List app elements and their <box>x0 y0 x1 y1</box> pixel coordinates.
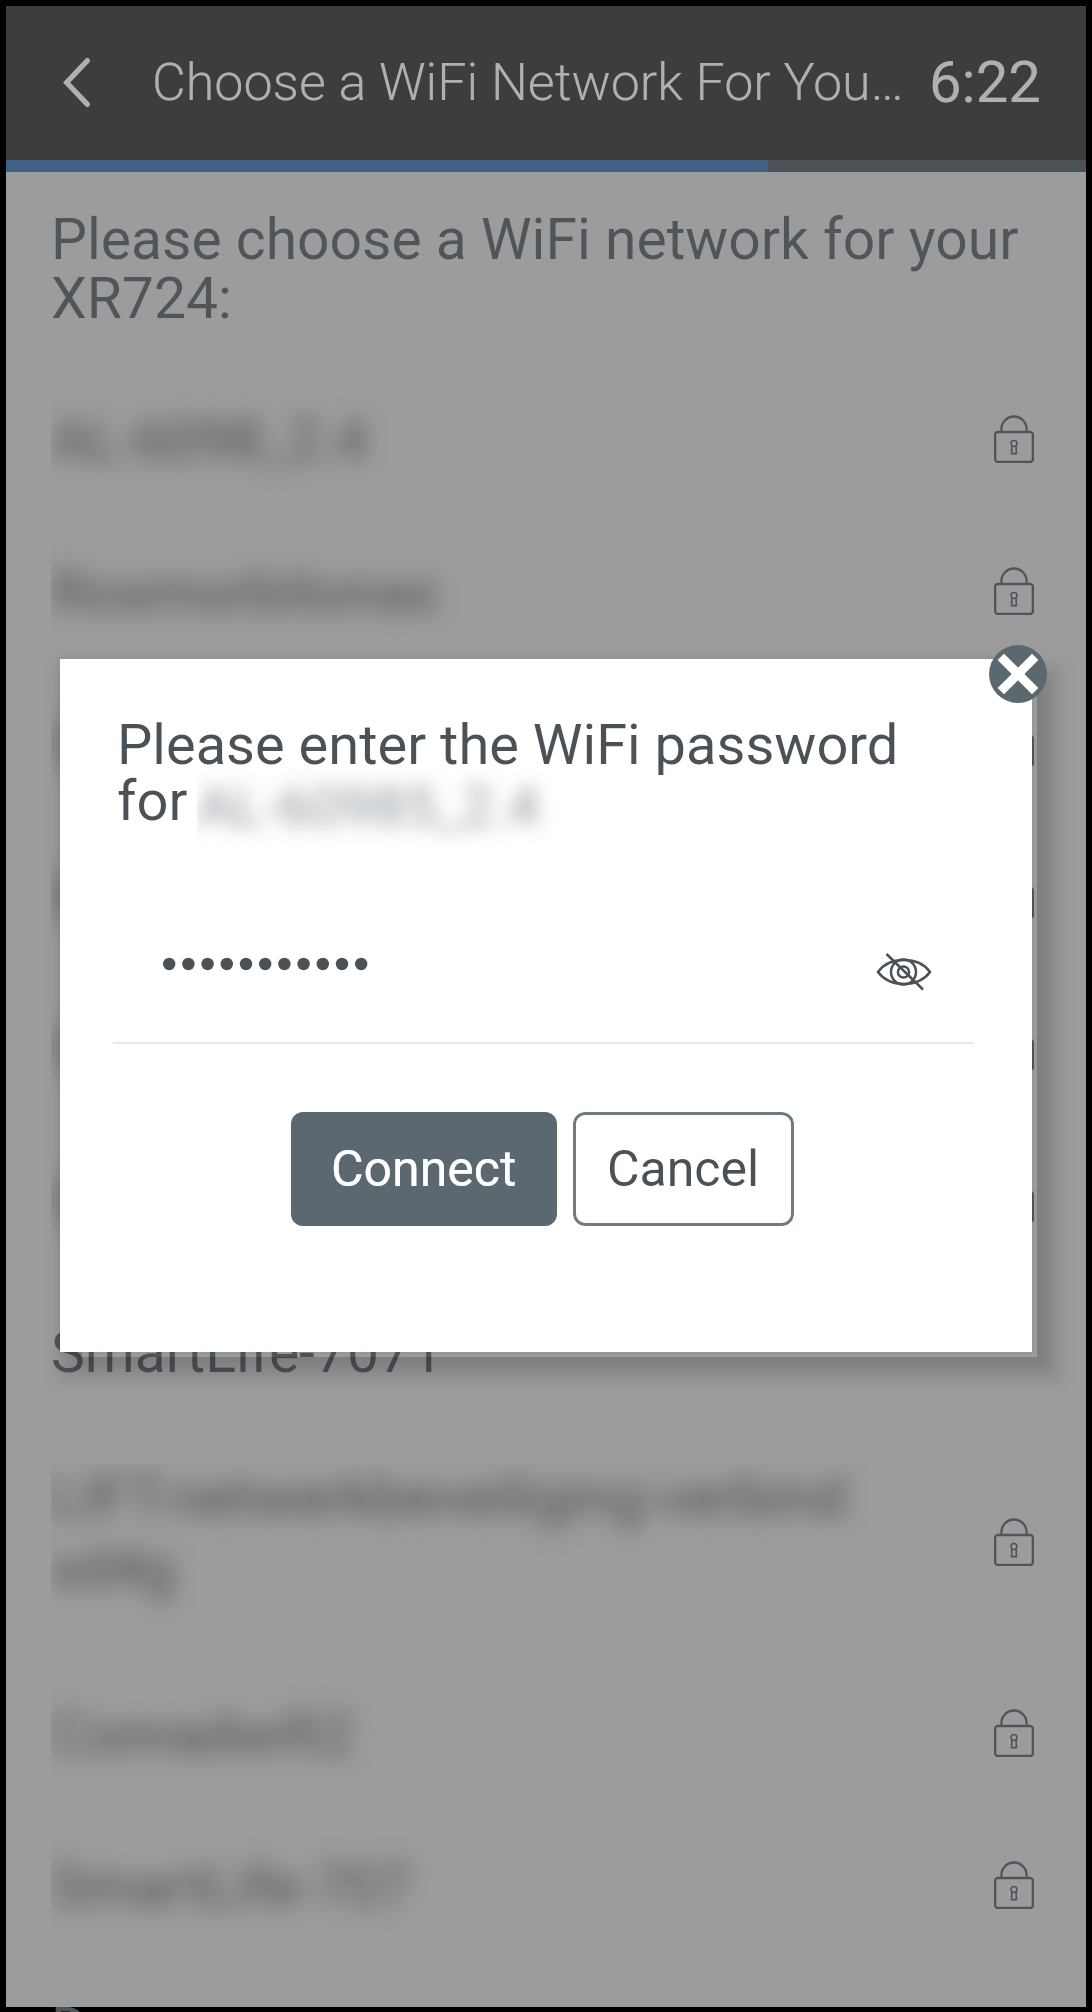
button[interactable]: Carlton24 <box>6 1123 1086 1275</box>
staticText: D <box>51 1995 89 2012</box>
staticText: Please enter the WiFi password <box>117 712 899 778</box>
button[interactable]: Back <box>38 43 116 121</box>
staticText: XR724: <box>51 265 232 332</box>
button[interactable]: Conradwifi2 <box>6 1657 1086 1809</box>
button[interactable]: AL-6098_2.4 <box>6 363 1086 515</box>
staticText: Canopy_net <box>51 1015 348 1082</box>
staticText: LIFT-netwerkbeveiliging-verbind xd4g <box>51 1464 847 1602</box>
button[interactable]: Eternity-5G <box>6 819 1086 971</box>
staticText: Carlton24 <box>51 1167 299 1234</box>
staticText: Please choose a WiFi network for your <box>51 206 1019 273</box>
staticText: for <box>117 768 188 834</box>
staticText: Conradwifi2 <box>51 1701 354 1768</box>
staticText: Choose a WiFi Network For You… <box>152 52 904 113</box>
button[interactable]: SmartLife-707 <box>6 1809 1086 1961</box>
button[interactable]: Cancel <box>573 1112 794 1226</box>
staticText: 6:22 <box>929 48 1041 116</box>
button[interactable]: LIFT-netwerkbeveiliging-verbind xd4g <box>6 1427 1086 1657</box>
staticText: Cancel <box>607 1140 760 1199</box>
staticText: AL-60985_2.4 <box>197 774 540 840</box>
button[interactable]: Canopy_net <box>6 971 1086 1123</box>
staticText: SmartLife-7071 <box>51 1319 444 1386</box>
button[interactable]: Conradwifi2 <box>6 667 1086 819</box>
staticText: Eternity-5G <box>51 863 330 930</box>
button[interactable]: Show password <box>858 926 950 1018</box>
button[interactable]: Connect <box>291 1112 557 1226</box>
staticText: SmartLife-707 <box>51 1853 411 1920</box>
button[interactable]: SmartLife-7071 <box>6 1275 1086 1427</box>
staticText: Rosmorbitonas <box>51 559 439 626</box>
staticText: Conradwifi2 <box>51 711 354 778</box>
staticText: Connect <box>331 1140 517 1199</box>
staticText: AL-6098_2.4 <box>51 407 368 474</box>
button[interactable]: Close <box>989 645 1047 703</box>
button[interactable]: Rosmorbitonas <box>6 515 1086 667</box>
